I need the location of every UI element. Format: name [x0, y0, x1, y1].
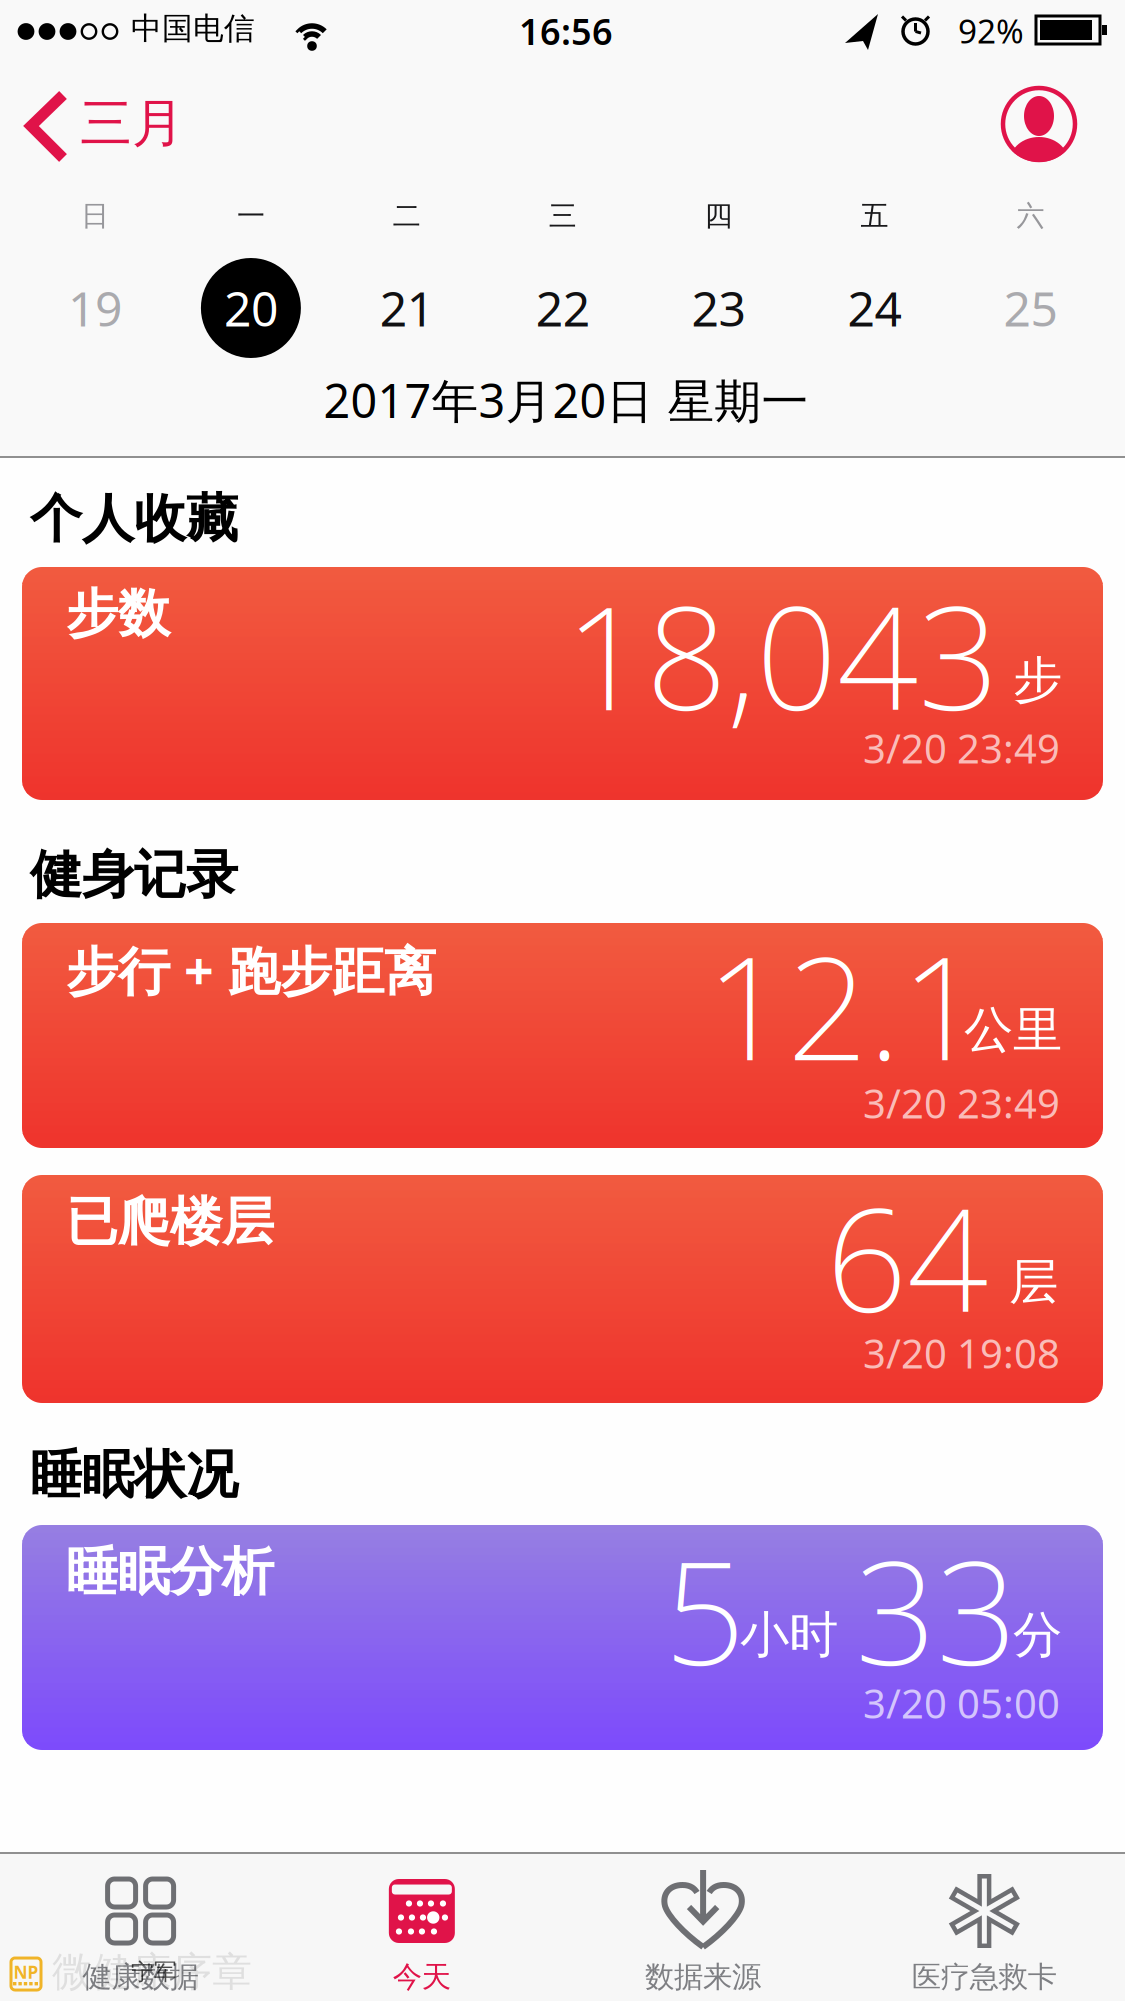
- staticText: 12.1: [706, 910, 982, 1100]
- staticText: 24: [847, 276, 901, 340]
- button[interactable]: 24: [819, 253, 929, 363]
- button[interactable]: [1001, 86, 1077, 162]
- button[interactable]: 健康数据: [0, 1854, 281, 2001]
- staticText: 三: [549, 199, 577, 233]
- staticText: 20: [224, 276, 278, 340]
- staticText: 宁军: [131, 1958, 177, 1986]
- button[interactable]: 步行 + 跑步距离: [22, 923, 1103, 1148]
- staticText: 3/20 23:49: [863, 721, 1060, 774]
- staticText: 已爬楼层: [66, 1190, 274, 1254]
- staticText: 睡眠状况: [30, 1443, 238, 1507]
- button[interactable]: 三月: [20, 90, 230, 163]
- staticText: 中国电信: [131, 10, 255, 47]
- staticText: 健身记录: [30, 843, 238, 907]
- staticText: 睡眠分析: [66, 1540, 274, 1604]
- staticText: 健康数据: [83, 1959, 199, 1995]
- staticText: 64: [826, 1162, 988, 1352]
- staticText: 今天: [393, 1959, 451, 1995]
- button[interactable]: 数据来源: [562, 1854, 843, 2001]
- staticText: 二: [393, 199, 421, 233]
- button[interactable]: 22: [508, 253, 618, 363]
- button[interactable]: 23: [664, 253, 774, 363]
- button[interactable]: 睡眠分析: [22, 1525, 1103, 1750]
- staticText: 23: [692, 276, 746, 340]
- staticText: 个人收藏: [30, 487, 238, 551]
- staticText: 数据来源: [645, 1959, 761, 1995]
- staticText: 22: [536, 276, 590, 340]
- staticText: 五: [860, 199, 888, 233]
- button[interactable]: 19: [40, 253, 150, 363]
- staticText: 92%: [958, 8, 1024, 53]
- staticText: 小时: [740, 1605, 838, 1665]
- button[interactable]: 今天: [281, 1854, 562, 2001]
- button[interactable]: 21: [352, 253, 462, 363]
- staticText: 2017年3月20日 星期一: [323, 369, 808, 431]
- staticText: 日: [81, 199, 109, 233]
- staticText: 5: [664, 1515, 745, 1705]
- staticText: 微健康序章: [52, 1947, 252, 1996]
- button[interactable]: 25: [975, 253, 1085, 363]
- staticText: 18,043: [565, 560, 999, 750]
- staticText: 医疗急救卡: [912, 1959, 1057, 1995]
- staticText: 四: [705, 199, 733, 233]
- button[interactable]: 已爬楼层: [22, 1175, 1103, 1403]
- staticText: 步数: [66, 582, 170, 646]
- staticText: 六: [1016, 199, 1044, 233]
- staticText: 分: [1013, 1605, 1062, 1665]
- staticText: 步: [1013, 650, 1062, 710]
- staticText: 3/20 05:00: [863, 1676, 1060, 1729]
- staticText: NP: [13, 1960, 38, 1983]
- staticText: 公里: [964, 1000, 1062, 1060]
- staticText: 步行 + 跑步距离: [66, 935, 436, 1005]
- staticText: 3/20 19:08: [863, 1326, 1060, 1379]
- staticText: 层: [1009, 1252, 1058, 1312]
- staticText: 3/20 23:49: [863, 1076, 1060, 1129]
- staticText: 19: [68, 276, 122, 340]
- staticText: 一: [237, 199, 265, 233]
- staticText: 21: [380, 276, 434, 340]
- button[interactable]: 20: [196, 253, 306, 363]
- button[interactable]: 步数: [22, 567, 1103, 800]
- staticText: 三月: [80, 92, 184, 155]
- staticText: 25: [1003, 276, 1057, 340]
- staticText: 16:56: [519, 7, 613, 55]
- button[interactable]: 医疗急救卡: [844, 1854, 1125, 2001]
- staticText: 33: [855, 1515, 1017, 1705]
